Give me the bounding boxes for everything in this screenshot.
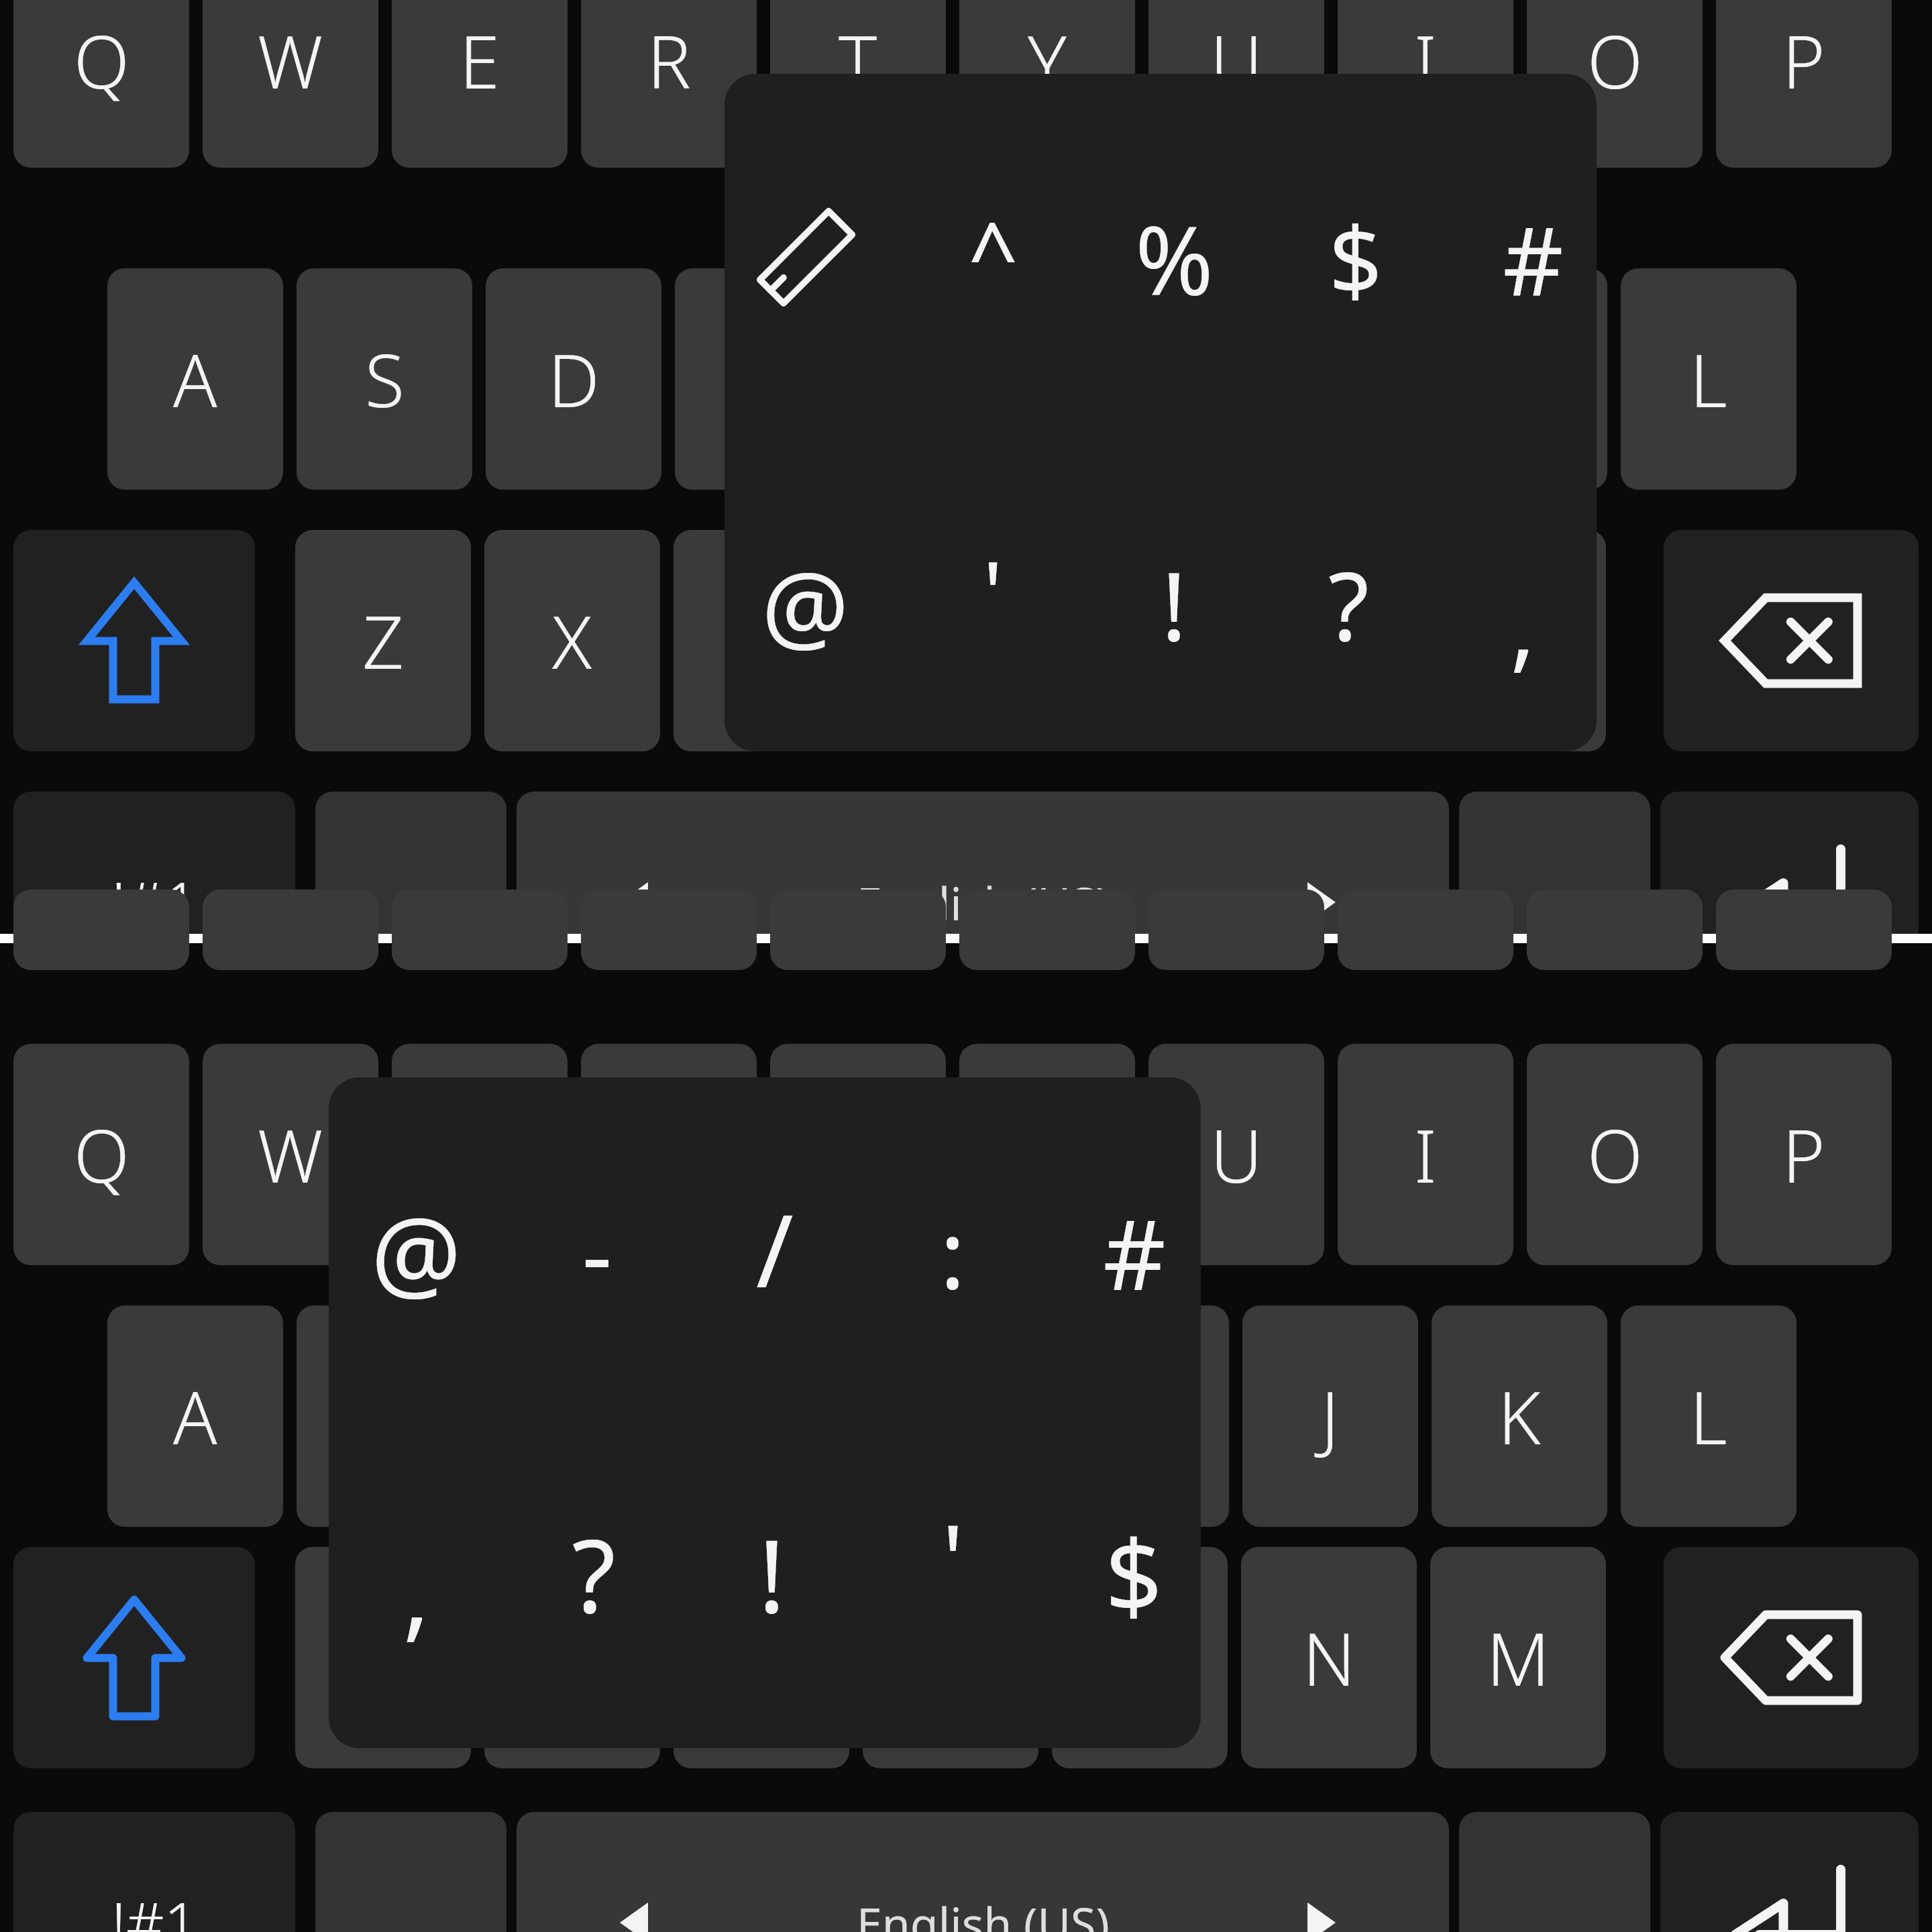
button[interactable]: U <box>1148 0 1324 168</box>
button[interactable] <box>770 890 946 970</box>
button[interactable] <box>517 792 1449 1013</box>
button[interactable]: I <box>1338 0 1513 168</box>
button[interactable]: , <box>1401 502 1645 746</box>
button[interactable]: O <box>1527 1044 1703 1265</box>
button[interactable]: A <box>107 268 283 490</box>
button[interactable]: S <box>297 268 472 490</box>
button[interactable] <box>13 890 189 970</box>
button[interactable]: @ <box>679 478 932 731</box>
button[interactable]: H <box>1053 1305 1229 1527</box>
button[interactable]: S <box>297 1305 472 1527</box>
button[interactable]: K <box>1432 268 1607 490</box>
button[interactable]: C <box>674 1547 849 1768</box>
button[interactable] <box>959 890 1135 970</box>
button[interactable]: , <box>285 1460 547 1721</box>
button[interactable]: J <box>1242 1305 1418 1527</box>
button[interactable]: B <box>1052 530 1228 751</box>
button[interactable]: Z <box>295 530 471 751</box>
button[interactable]: L <box>1621 268 1796 490</box>
button[interactable]: X <box>484 1547 660 1768</box>
button[interactable]: A <box>107 1305 283 1527</box>
button[interactable]: Q <box>13 1044 189 1265</box>
button[interactable]: $ <box>1233 136 1477 380</box>
button[interactable] <box>1459 1812 1650 1932</box>
button[interactable] <box>517 1812 1449 1932</box>
button[interactable]: ' <box>879 477 1106 704</box>
button[interactable]: Enter <box>1660 792 1919 1013</box>
button[interactable]: / <box>644 1118 906 1379</box>
button[interactable] <box>1338 890 1513 970</box>
button[interactable] <box>1716 890 1892 970</box>
button[interactable] <box>1148 890 1324 970</box>
button[interactable]: F <box>675 268 851 490</box>
button[interactable] <box>203 890 378 970</box>
button[interactable]: H <box>1053 268 1229 490</box>
button[interactable]: ? <box>1226 482 1470 726</box>
button[interactable]: E <box>392 0 568 168</box>
button[interactable]: P <box>1716 0 1892 168</box>
button[interactable] <box>392 890 568 970</box>
button[interactable]: - <box>475 1130 719 1374</box>
button[interactable]: C <box>674 530 849 751</box>
button[interactable]: @ <box>285 1121 547 1383</box>
button[interactable]: I <box>1338 1044 1513 1265</box>
button[interactable]: Y <box>959 1044 1135 1265</box>
button[interactable]: T <box>770 1044 946 1265</box>
button[interactable]: R <box>581 1044 757 1265</box>
button[interactable]: U <box>1148 1044 1324 1265</box>
button[interactable]: Y <box>959 0 1135 168</box>
button[interactable]: N <box>1241 530 1417 751</box>
button[interactable]: V <box>863 1547 1038 1768</box>
button[interactable]: R <box>581 0 757 168</box>
button[interactable]: ! <box>641 1443 902 1705</box>
button[interactable] <box>581 890 757 970</box>
button[interactable]: Shift <box>13 530 255 751</box>
button[interactable] <box>1527 890 1703 970</box>
button[interactable]: Q <box>13 0 189 168</box>
button[interactable]: $ <box>1003 1443 1265 1705</box>
button[interactable]: X <box>484 530 660 751</box>
button[interactable]: Z <box>295 1547 471 1768</box>
button[interactable]: L <box>1621 1305 1796 1527</box>
button[interactable]: Backspace <box>1664 1547 1919 1768</box>
button[interactable]: Enter <box>1660 1812 1919 1932</box>
button[interactable]: J <box>1242 268 1418 490</box>
button[interactable]: V <box>863 530 1038 751</box>
button[interactable]: K <box>1432 1305 1607 1527</box>
button[interactable] <box>315 792 506 1013</box>
button[interactable]: Backspace <box>1664 530 1919 751</box>
button[interactable]: : <box>830 1130 1075 1374</box>
button[interactable]: Edit <box>751 205 859 312</box>
button[interactable]: % <box>1052 136 1296 380</box>
button[interactable]: D <box>486 268 661 490</box>
button[interactable]: !#1 <box>13 792 295 1013</box>
button[interactable] <box>329 1077 1201 1748</box>
button[interactable]: M <box>1430 530 1606 751</box>
button[interactable]: ^ <box>879 138 1106 365</box>
button[interactable]: ? <box>463 1443 724 1705</box>
button[interactable]: ' <box>826 1431 1079 1684</box>
button[interactable]: ! <box>1052 482 1296 726</box>
button[interactable]: N <box>1241 1547 1417 1768</box>
button[interactable]: Shift <box>13 1547 255 1768</box>
button[interactable]: O <box>1527 0 1703 168</box>
button[interactable]: T <box>770 0 946 168</box>
button[interactable]: W <box>203 0 378 168</box>
button[interactable]: !#1 <box>13 1812 295 1932</box>
button[interactable]: G <box>864 1305 1040 1527</box>
button[interactable] <box>315 1812 506 1932</box>
button[interactable]: E <box>392 1044 568 1265</box>
button[interactable] <box>724 74 1597 751</box>
button[interactable]: M <box>1430 1547 1606 1768</box>
button[interactable]: # <box>1411 136 1655 380</box>
button[interactable]: P <box>1716 1044 1892 1265</box>
button[interactable] <box>1459 792 1650 1013</box>
button[interactable]: W <box>203 1044 378 1265</box>
button[interactable]: # <box>1008 1126 1260 1379</box>
button[interactable]: B <box>1052 1547 1228 1768</box>
